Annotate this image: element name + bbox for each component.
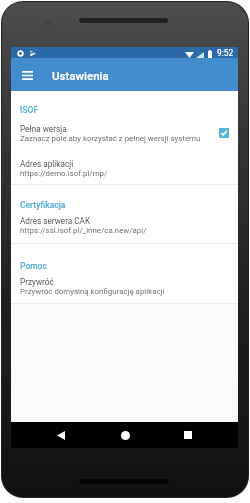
button[interactable]: Przywróć [11, 269, 238, 303]
button[interactable]: Home [112, 422, 138, 448]
staticText: ISOF [20, 105, 39, 115]
staticText: Zaznacz pole aby korzystać z pełnej wers… [20, 134, 201, 143]
staticText: 9:52 [217, 48, 234, 58]
staticText: https://ssl.isof.pl/_inne/ca.new/api/ [20, 226, 147, 235]
staticText: Pełna wersja [20, 124, 67, 134]
staticText: Adres serwera CAK [20, 216, 91, 226]
button[interactable]: Open navigation menu [16, 64, 38, 86]
staticText: Adres aplikacji [20, 159, 74, 169]
staticText: Przywróć [20, 277, 54, 287]
staticText: Certyfikacja [20, 200, 66, 210]
button[interactable]: Back [48, 422, 74, 448]
staticText: Ustawienia [52, 69, 109, 82]
staticText: Przywróć domyślną konfigurację aplikacji [20, 287, 165, 296]
staticText: https://demo.isof.pl/mp/ [20, 169, 108, 178]
button[interactable]: Recent apps [175, 422, 201, 448]
button[interactable]: Adres aplikacji [11, 151, 238, 184]
button[interactable]: Pełna wersja [11, 118, 238, 151]
button[interactable]: Adres serwera CAK [11, 208, 238, 243]
staticText: Pomoc [20, 261, 47, 271]
